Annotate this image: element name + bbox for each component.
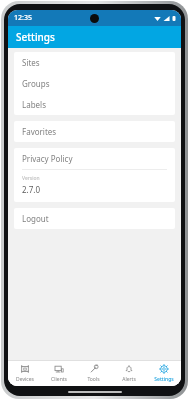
button[interactable]: Labels — [14, 94, 175, 115]
staticText: Devices — [16, 376, 34, 383]
button[interactable]: Devices — [8, 361, 42, 386]
button[interactable]: Favorites — [14, 121, 175, 142]
staticText: 2.7.0 — [22, 184, 41, 195]
button[interactable]: Alerts — [111, 361, 146, 386]
staticText: Settings — [154, 376, 174, 383]
staticText: Privacy Policy — [22, 153, 73, 164]
button[interactable]: Privacy Policy — [14, 148, 175, 169]
button[interactable]: Tools — [76, 361, 111, 386]
staticText: Groups — [22, 78, 50, 89]
staticText: Sites — [22, 57, 40, 68]
button[interactable]: Groups — [14, 73, 175, 94]
staticText: Settings — [16, 30, 55, 44]
staticText: Alerts — [122, 376, 136, 383]
staticText: Favorites — [22, 126, 57, 137]
button[interactable]: Version — [14, 170, 175, 202]
button[interactable]: Clients — [42, 361, 76, 386]
button[interactable]: Logout — [14, 208, 175, 229]
staticText: Version — [22, 175, 40, 182]
button[interactable]: Sites — [14, 52, 175, 73]
staticText: Clients — [51, 376, 67, 383]
staticText: Logout — [22, 213, 49, 224]
staticText: Labels — [22, 99, 47, 110]
button[interactable]: Settings — [146, 361, 181, 386]
staticText: 12:35 — [14, 13, 32, 23]
staticText: Tools — [87, 376, 100, 383]
